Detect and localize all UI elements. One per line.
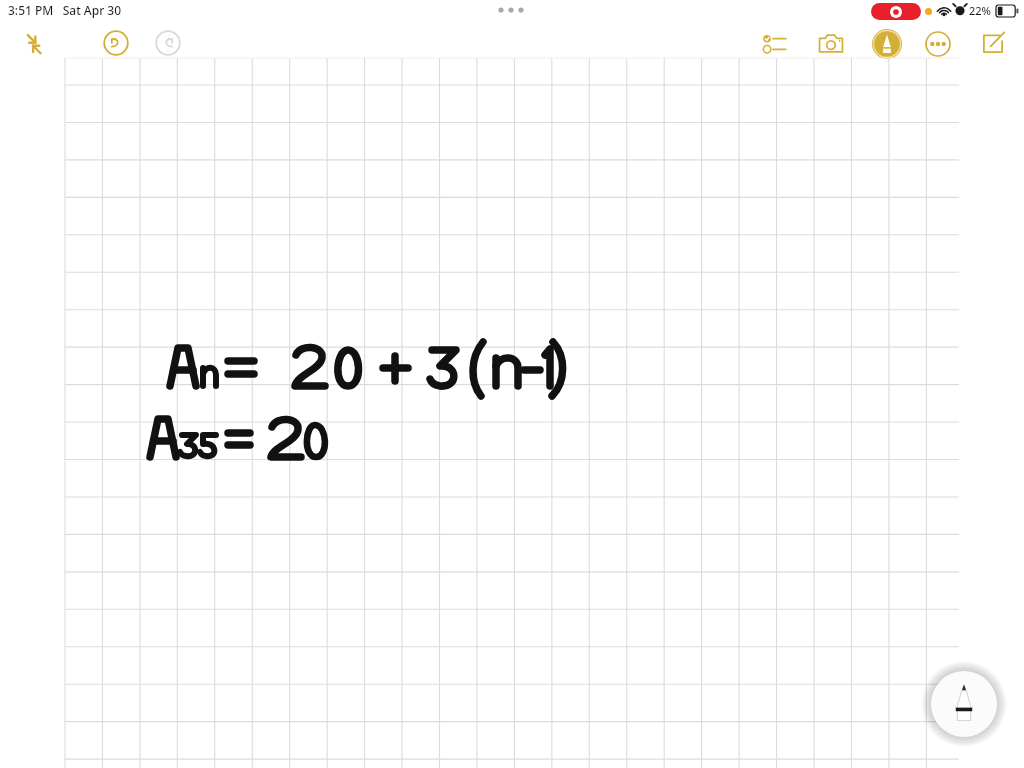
button[interactable]: Edit [974,24,1012,62]
button[interactable]: Camera [812,25,850,63]
staticText: 3:51 PM Sat Apr 30 [8,2,122,18]
button[interactable]: Pen tool shortcut [931,671,997,737]
button[interactable]: Collapse [16,26,52,62]
staticText: 22% [969,3,991,18]
button[interactable]: Undo [98,25,134,61]
button[interactable]: Checklist [756,25,794,63]
button[interactable]: Pen tool [867,24,907,64]
button[interactable]: Redo [150,25,186,61]
button[interactable]: More options [919,25,957,63]
